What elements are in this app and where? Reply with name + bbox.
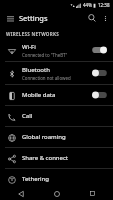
button[interactable]: Back bbox=[6, 187, 36, 200]
button[interactable]: Share & connect bbox=[0, 148, 113, 168]
staticText: Mobile data bbox=[22, 91, 56, 99]
staticText: 12:38 bbox=[98, 2, 110, 8]
staticText: Wi-Fi bbox=[22, 43, 36, 51]
staticText: WIRELESS NETWORKS bbox=[6, 31, 60, 37]
button[interactable]: Mobile data bbox=[0, 85, 113, 105]
staticText: Tethering bbox=[22, 175, 49, 183]
button[interactable]: Search bbox=[85, 11, 99, 25]
button[interactable]: Wi-Fi bbox=[0, 39, 113, 61]
button[interactable]: Recent apps bbox=[77, 187, 107, 200]
button[interactable]: Toggle off bbox=[91, 90, 108, 100]
staticText: Connected to "TheBT" bbox=[22, 52, 68, 58]
button[interactable]: Toggle off bbox=[91, 68, 108, 78]
button[interactable]: Global roaming bbox=[0, 127, 113, 147]
staticText: Connection not allowed bbox=[22, 75, 71, 81]
staticText: Share & connect bbox=[22, 154, 68, 162]
staticText: Global roaming bbox=[22, 133, 66, 141]
staticText: Settings bbox=[19, 13, 48, 23]
button[interactable]: Navigation menu bbox=[4, 12, 16, 24]
staticText: More bbox=[22, 191, 37, 199]
button[interactable]: Tethering bbox=[0, 169, 113, 189]
staticText: Call bbox=[22, 112, 33, 120]
staticText: 44% bbox=[83, 2, 92, 8]
button[interactable]: More bbox=[0, 190, 113, 200]
button[interactable]: Bluetooth bbox=[0, 62, 113, 84]
button[interactable]: More options bbox=[99, 12, 111, 24]
button[interactable]: Toggle on bbox=[91, 45, 108, 55]
staticText: Bluetooth bbox=[22, 66, 50, 74]
button[interactable]: Call bbox=[0, 106, 113, 126]
button[interactable]: Home bbox=[42, 187, 72, 200]
